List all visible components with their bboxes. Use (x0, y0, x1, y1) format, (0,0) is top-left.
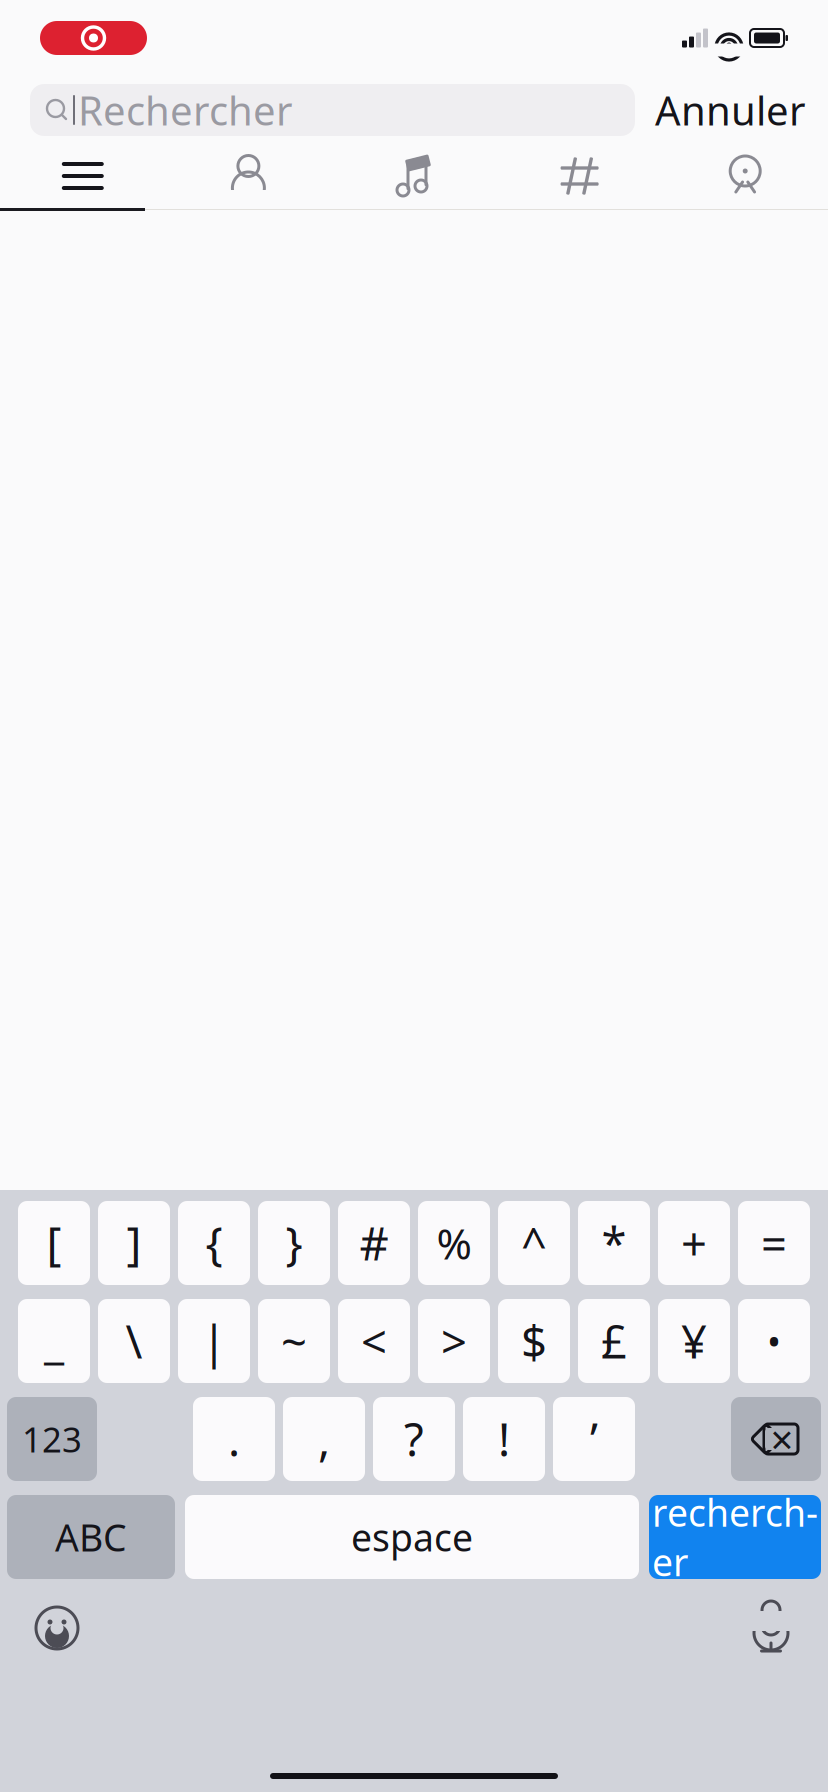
staticText: • (767, 1316, 781, 1366)
staticText: Annuler (655, 83, 806, 136)
staticText: < (361, 1311, 387, 1371)
staticText: > (441, 1311, 467, 1371)
staticText: $ (521, 1311, 547, 1371)
button[interactable]: $ (498, 1299, 570, 1383)
button[interactable]: [ (18, 1201, 90, 1285)
staticText: { (205, 1213, 222, 1273)
button[interactable]: ] (98, 1201, 170, 1285)
staticText: ABC (55, 1512, 127, 1562)
button[interactable]: • (738, 1299, 810, 1383)
button[interactable]: % (418, 1201, 490, 1285)
button[interactable]: Tags (497, 144, 662, 208)
staticText: . (228, 1409, 240, 1469)
button[interactable]: espace (185, 1495, 639, 1579)
button[interactable]: £ (578, 1299, 650, 1383)
button[interactable]: ? (373, 1397, 455, 1481)
button[interactable]: Places (662, 144, 828, 208)
button[interactable]: Delete (731, 1397, 821, 1481)
staticText: , (318, 1409, 330, 1469)
staticText: ’ (590, 1409, 598, 1469)
button[interactable]: | (178, 1299, 250, 1383)
button[interactable]: ~ (258, 1299, 330, 1383)
button[interactable]: ¥ (658, 1299, 730, 1383)
button[interactable]: ! (463, 1397, 545, 1481)
button[interactable]: = (738, 1201, 810, 1285)
staticText: rechercher (652, 1487, 818, 1587)
button[interactable]: + (658, 1201, 730, 1285)
staticText: ] (126, 1213, 141, 1273)
button[interactable]: Emoji keyboard (27, 1598, 87, 1658)
staticText: £ (601, 1311, 627, 1371)
staticText: espace (351, 1512, 473, 1562)
button[interactable]: < (338, 1299, 410, 1383)
button[interactable]: Artists (166, 144, 331, 208)
staticText: + (681, 1213, 707, 1273)
button[interactable]: } (258, 1201, 330, 1285)
button[interactable]: Rechercher (30, 84, 635, 136)
button[interactable]: Dictation (741, 1595, 801, 1661)
button[interactable]: Recording indicator (40, 21, 147, 55)
staticText: \ (125, 1311, 142, 1371)
button[interactable]: _ (18, 1299, 90, 1383)
staticText: ? (404, 1409, 424, 1469)
button[interactable]: 123 (7, 1397, 97, 1481)
staticText: = (761, 1213, 787, 1273)
staticText: * (601, 1213, 626, 1273)
button[interactable]: > (418, 1299, 490, 1383)
staticText: [ (46, 1213, 61, 1273)
staticText: ~ (281, 1311, 307, 1371)
button[interactable]: rechercher (649, 1495, 821, 1579)
button[interactable]: Annuler (635, 84, 828, 136)
staticText: _ (44, 1311, 64, 1371)
button[interactable]: ’ (553, 1397, 635, 1481)
staticText: } (285, 1213, 302, 1273)
button[interactable]: * (578, 1201, 650, 1285)
button[interactable]: All (0, 144, 166, 208)
staticText: × (770, 1412, 793, 1465)
button[interactable]: { (178, 1201, 250, 1285)
staticText: | (201, 1311, 226, 1371)
button[interactable]: ^ (498, 1201, 570, 1285)
staticText: % (436, 1215, 471, 1271)
staticText: # (359, 1213, 388, 1273)
staticText: ! (498, 1409, 510, 1469)
button[interactable]: Songs (331, 144, 497, 208)
button[interactable]: ABC (7, 1495, 175, 1579)
staticText: ^ (521, 1213, 547, 1273)
staticText: 123 (22, 1416, 82, 1462)
button[interactable]: # (338, 1201, 410, 1285)
staticText: Rechercher (78, 83, 293, 136)
button[interactable]: \ (98, 1299, 170, 1383)
button[interactable]: . (193, 1397, 275, 1481)
button[interactable]: , (283, 1397, 365, 1481)
staticText: ¥ (681, 1311, 707, 1371)
